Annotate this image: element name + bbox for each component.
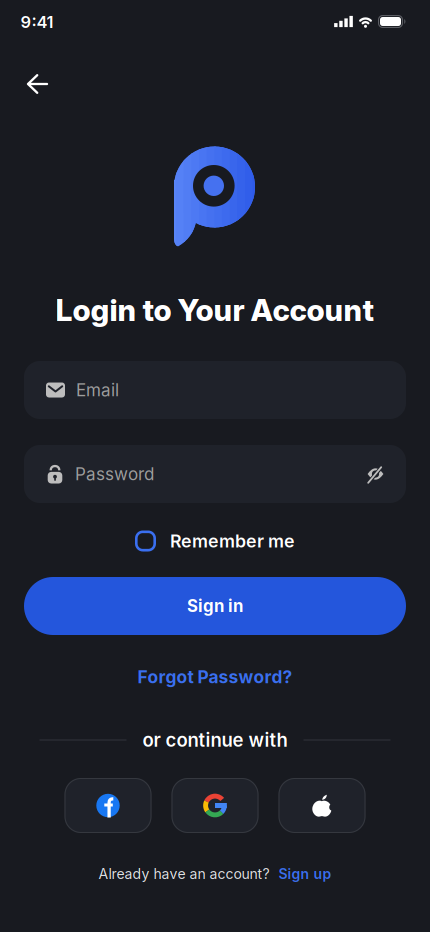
button[interactable]: Remember me <box>135 530 295 552</box>
button[interactable]: Sign up <box>278 865 331 882</box>
staticText: Forgot Password? <box>137 666 292 687</box>
staticText: Sign in <box>187 596 243 616</box>
staticText: Login to Your Account <box>55 292 374 328</box>
button[interactable]: Back <box>15 62 59 106</box>
staticText: Remember me <box>170 530 295 552</box>
button[interactable]: Continue with Facebook <box>64 778 151 833</box>
staticText: 9:41 <box>20 12 53 32</box>
staticText: Email <box>76 380 119 400</box>
button[interactable]: Email <box>24 361 406 419</box>
staticText: or continue with <box>142 729 287 751</box>
button[interactable]: Sign in <box>24 577 406 635</box>
button[interactable]: Show password <box>365 463 386 484</box>
button[interactable]: Forgot Password? <box>137 666 292 687</box>
staticText: Password <box>75 464 154 484</box>
staticText: Sign up <box>278 865 331 882</box>
button[interactable]: Continue with Google <box>171 778 258 833</box>
button[interactable]: Password <box>24 445 406 503</box>
button[interactable]: Continue with Apple <box>278 778 365 833</box>
staticText: Already have an account? <box>98 865 269 882</box>
